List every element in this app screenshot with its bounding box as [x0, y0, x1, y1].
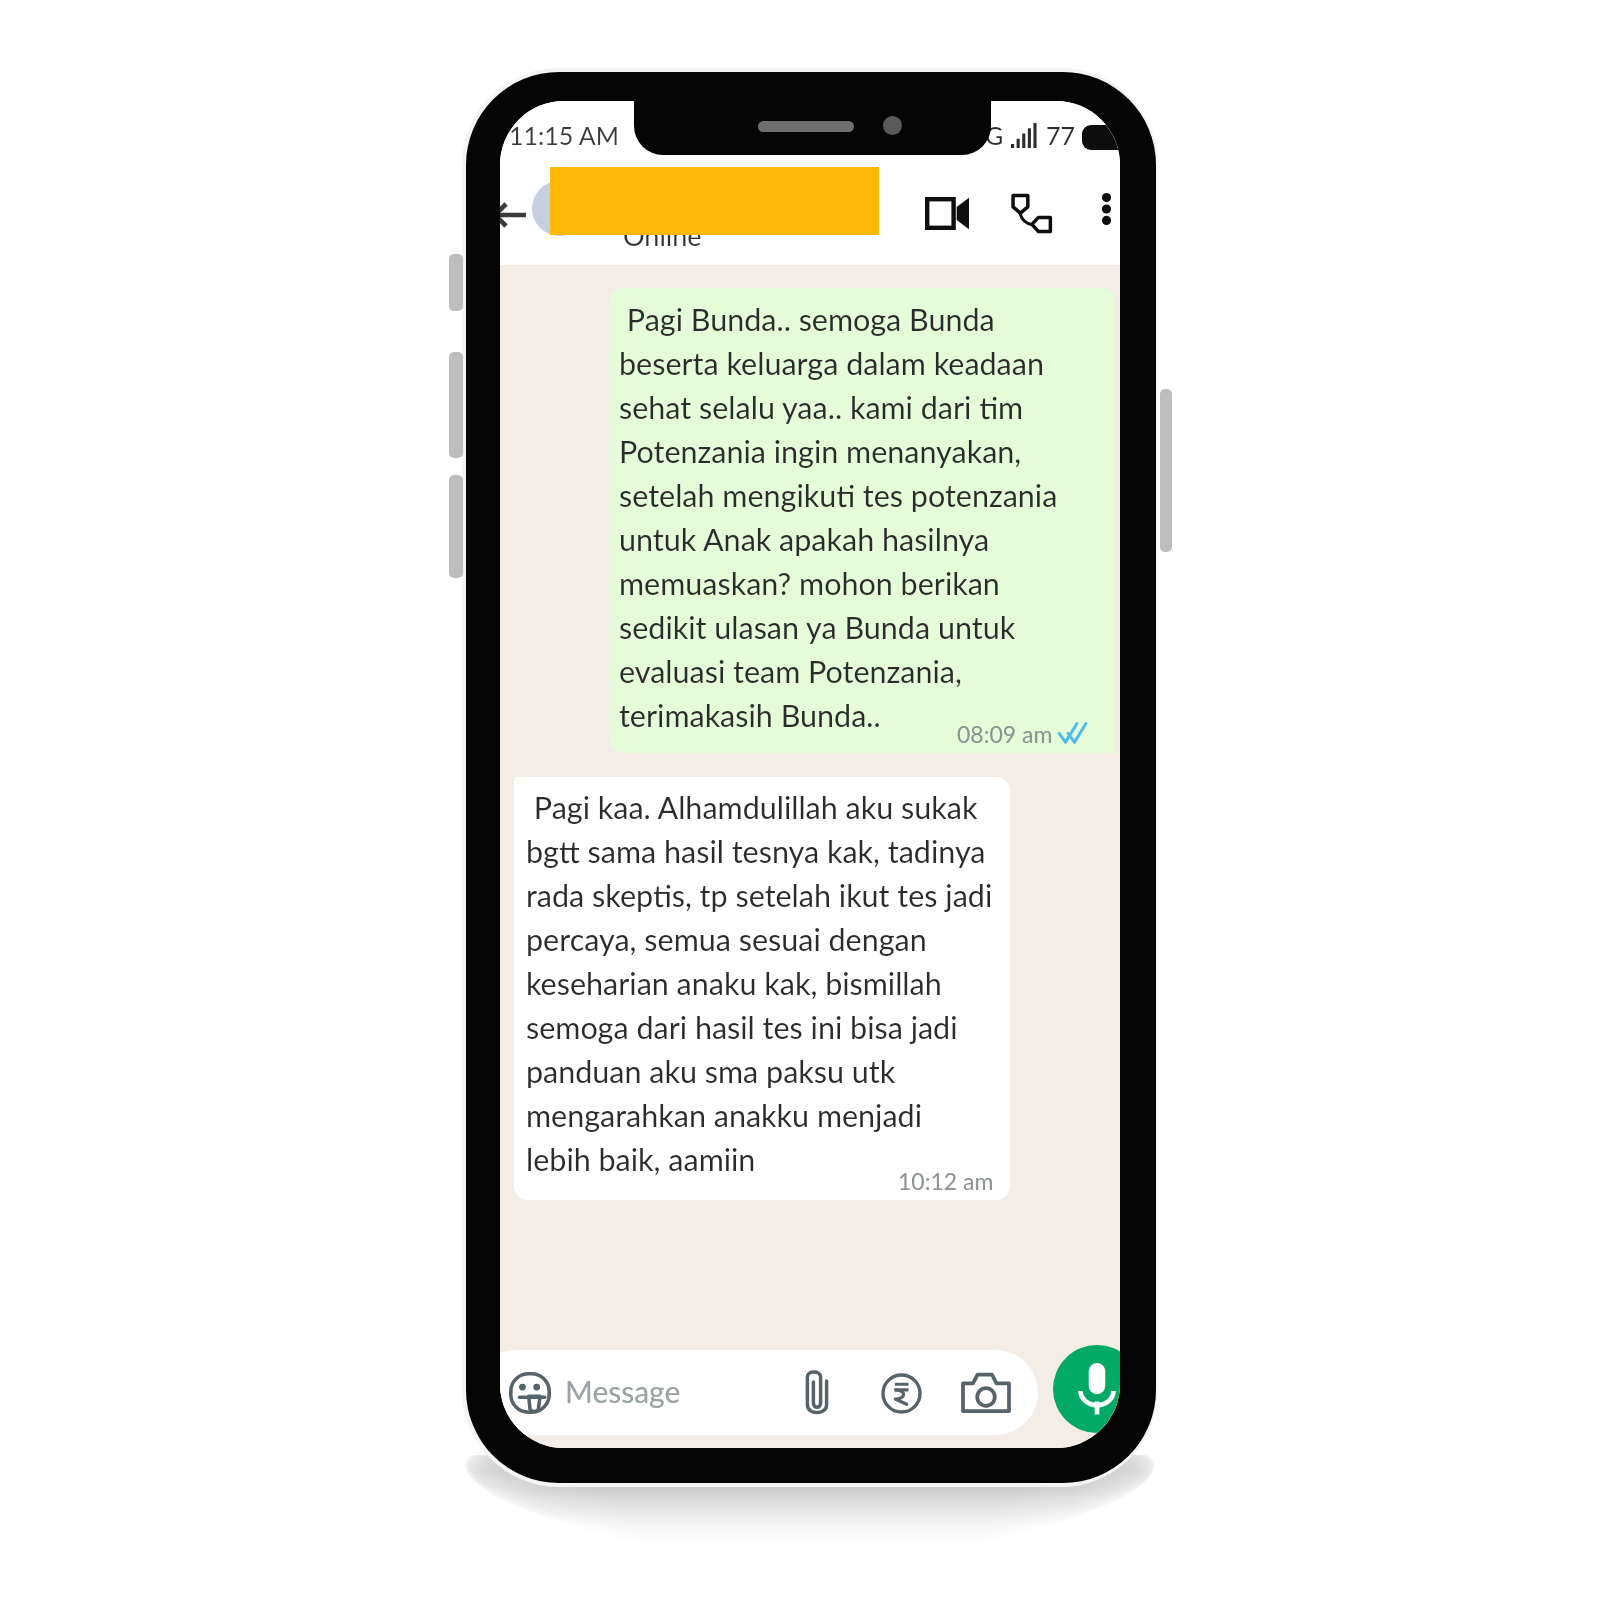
button[interactable]: Video call [912, 171, 982, 255]
button[interactable]: Voice message [1053, 1345, 1120, 1433]
staticText: Pagi Bunda.. semoga Bunda beserta keluar… [619, 301, 1058, 734]
button[interactable]: Payment [876, 1359, 926, 1427]
button[interactable]: Message [500, 1350, 1038, 1435]
staticText: 77 [1046, 120, 1076, 150]
staticText: 08:09 am [957, 720, 1053, 748]
button[interactable]: Camera [958, 1359, 1014, 1427]
staticText: Pagi kaa. Alhamdulillah aku sukak bgtt s… [526, 789, 993, 1178]
button[interactable]: Attach [792, 1359, 842, 1427]
staticText: 11:15 AM [509, 120, 619, 150]
button[interactable]: More options [1092, 167, 1120, 251]
button[interactable]: Emoji [506, 1365, 554, 1421]
button[interactable]: Contact info, Online [530, 167, 902, 259]
button[interactable]: Pagi Bunda.. semoga Bunda beserta keluar… [609, 288, 1115, 753]
button[interactable]: Pagi kaa. Alhamdulillah aku sukak bgtt s… [514, 777, 1010, 1200]
button[interactable]: Voice call [1000, 171, 1062, 255]
staticText: Message [565, 1373, 681, 1409]
staticText: Online [623, 219, 702, 251]
staticText: G [985, 120, 1004, 150]
button[interactable]: Back [500, 173, 534, 257]
staticText: 10:12 am [898, 1167, 994, 1195]
